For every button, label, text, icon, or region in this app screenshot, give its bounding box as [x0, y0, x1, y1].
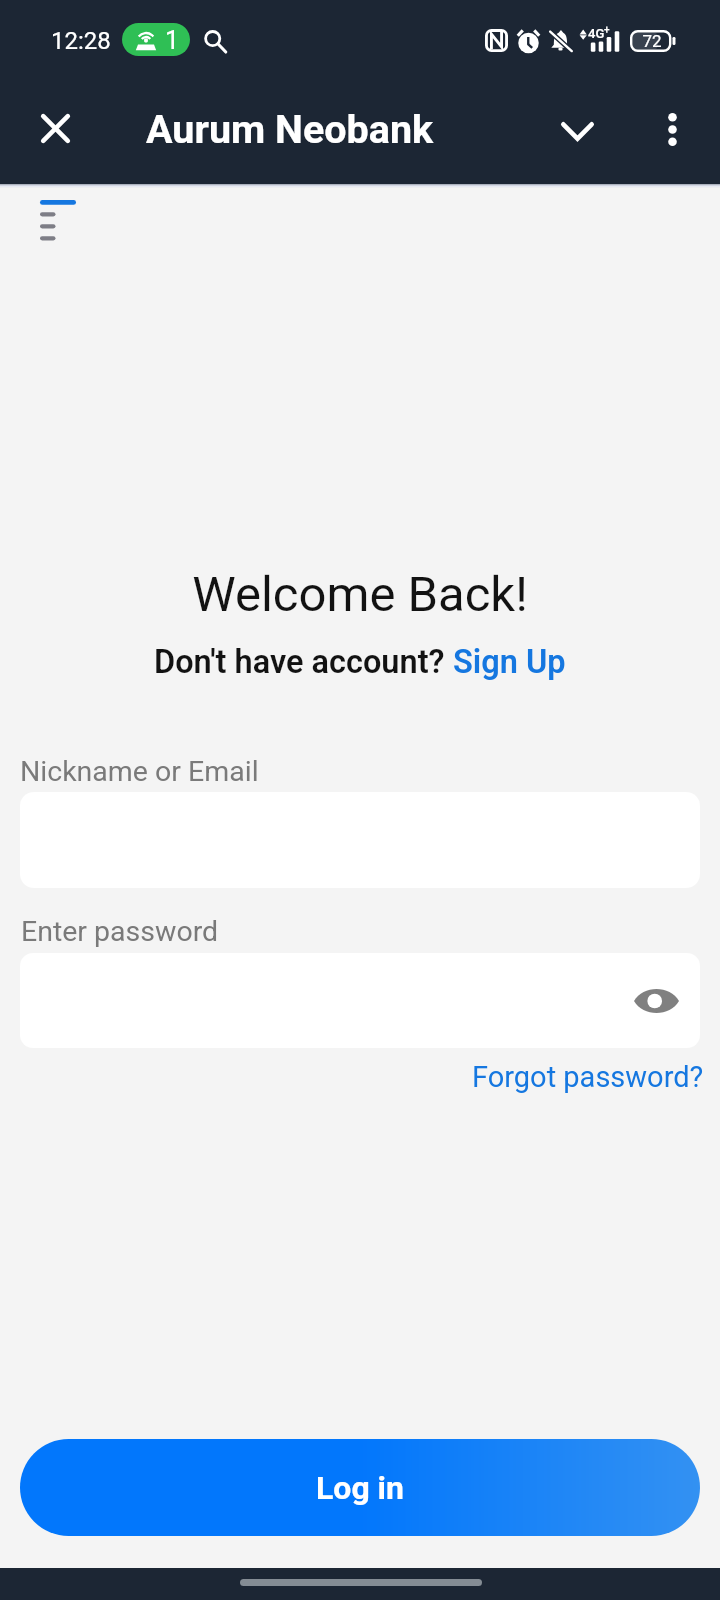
staticText: 1 [165, 26, 180, 55]
staticText: Welcome Back! [0, 566, 720, 623]
staticText: Aurum Neobank [146, 106, 434, 152]
staticText: 72 [633, 31, 671, 51]
button[interactable]: Enter password [20, 953, 700, 1048]
button[interactable]: Search [202, 28, 228, 54]
button[interactable]: Expand account list [549, 103, 605, 159]
staticText: Don't have account? [154, 643, 453, 681]
button[interactable]: Sign Up [453, 643, 566, 681]
button[interactable]: Forgot password? [472, 1060, 704, 1094]
staticText: 4G [588, 26, 605, 41]
button[interactable]: Log in [20, 1439, 700, 1536]
button[interactable]: Close [27, 100, 84, 157]
staticText: Nickname or Email [20, 755, 259, 788]
staticText: Enter password [21, 915, 219, 948]
button[interactable]: More options [644, 101, 700, 157]
staticText: Log in [316, 1469, 405, 1507]
staticText: 12:28 [51, 27, 111, 55]
button[interactable]: Show password [631, 976, 681, 1026]
staticText: + [604, 24, 610, 36]
